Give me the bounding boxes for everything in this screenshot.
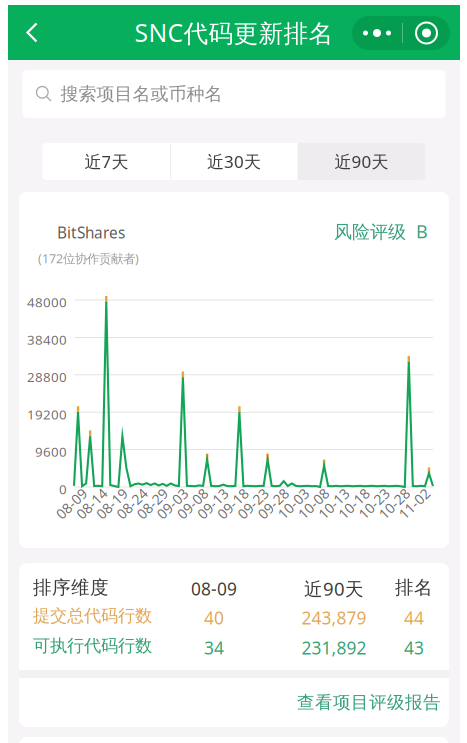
staticText: 48000 bbox=[27, 293, 67, 311]
staticText: 08-29 bbox=[134, 494, 171, 513]
staticText: 09-18 bbox=[214, 494, 251, 513]
staticText: 提交总代码行数 bbox=[33, 605, 152, 627]
staticText: 231,892 bbox=[301, 636, 366, 660]
staticText: 09-28 bbox=[255, 494, 292, 513]
staticText: 近90天 bbox=[335, 150, 389, 173]
staticText: 08-09 bbox=[53, 494, 90, 513]
staticText: SNC代码更新排名 bbox=[134, 16, 333, 49]
staticText: 风险评级 B bbox=[334, 219, 428, 243]
staticText: 10-08 bbox=[295, 494, 332, 513]
staticText: 09-23 bbox=[234, 494, 271, 513]
staticText: 10-18 bbox=[335, 494, 372, 513]
staticText: 08-14 bbox=[73, 494, 110, 513]
staticText: 近7天 bbox=[84, 150, 128, 173]
staticText: 排序维度 bbox=[33, 576, 109, 599]
button[interactable]: 查看项目评级报告 bbox=[19, 678, 449, 727]
staticText: 9600 bbox=[35, 443, 67, 461]
staticText: 243,879 bbox=[301, 606, 366, 630]
staticText: 0 bbox=[59, 480, 67, 498]
button[interactable]: 近7天 bbox=[43, 143, 170, 180]
staticText: 34 bbox=[204, 636, 224, 660]
staticText: 40 bbox=[204, 606, 224, 630]
staticText: 08-24 bbox=[113, 494, 150, 513]
staticText: 查看项目评级报告 bbox=[297, 691, 441, 713]
staticText: 43 bbox=[404, 636, 424, 660]
staticText: 44 bbox=[404, 606, 424, 630]
staticText: 19200 bbox=[27, 405, 67, 423]
staticText: 近90天 bbox=[304, 576, 364, 601]
button[interactable]: Close mini program bbox=[403, 16, 450, 50]
staticText: 09-08 bbox=[174, 494, 211, 513]
staticText: BitShares bbox=[57, 222, 125, 243]
staticText: 搜索项目名或币种名 bbox=[60, 83, 222, 105]
button[interactable]: 近30天 bbox=[170, 143, 298, 180]
button[interactable]: Back bbox=[8, 5, 56, 60]
staticText: 11-02 bbox=[396, 494, 433, 513]
staticText: 28800 bbox=[27, 368, 67, 386]
staticText: 08-09 bbox=[191, 577, 237, 601]
staticText: 38400 bbox=[27, 330, 67, 349]
staticText: 09-13 bbox=[194, 494, 231, 513]
staticText: 可执行代码行数 bbox=[33, 635, 152, 657]
button[interactable]: 搜索项目名或币种名 bbox=[22, 70, 445, 118]
staticText: 08-19 bbox=[93, 494, 130, 513]
staticText: 排名 bbox=[395, 576, 433, 599]
button[interactable]: More options bbox=[352, 16, 402, 50]
staticText: 10-13 bbox=[315, 494, 352, 513]
button[interactable]: 近90天 bbox=[298, 143, 425, 180]
staticText: 10-28 bbox=[376, 494, 413, 513]
staticText: 近30天 bbox=[207, 150, 261, 173]
staticText: 10-03 bbox=[275, 494, 312, 513]
staticText: (172位协作贡献者) bbox=[38, 250, 139, 267]
staticText: 09-03 bbox=[154, 494, 191, 513]
staticText: 10-23 bbox=[355, 494, 392, 513]
